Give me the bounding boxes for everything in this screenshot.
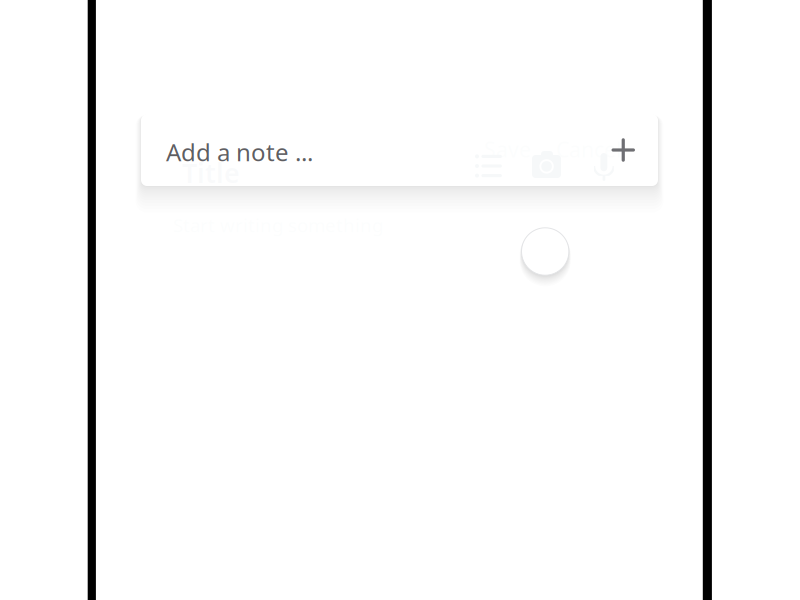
button[interactable]: New note [517,223,574,280]
staticText: Title [182,155,240,190]
staticText: Cancel [556,135,622,163]
button[interactable]: Format list [475,155,502,176]
staticText: Add a note ... [166,136,313,168]
button[interactable]: Camera [532,151,561,178]
button[interactable]: Add a note ... [141,114,658,186]
button[interactable]: Cancel [556,135,622,163]
button[interactable]: Dictate [594,148,614,181]
